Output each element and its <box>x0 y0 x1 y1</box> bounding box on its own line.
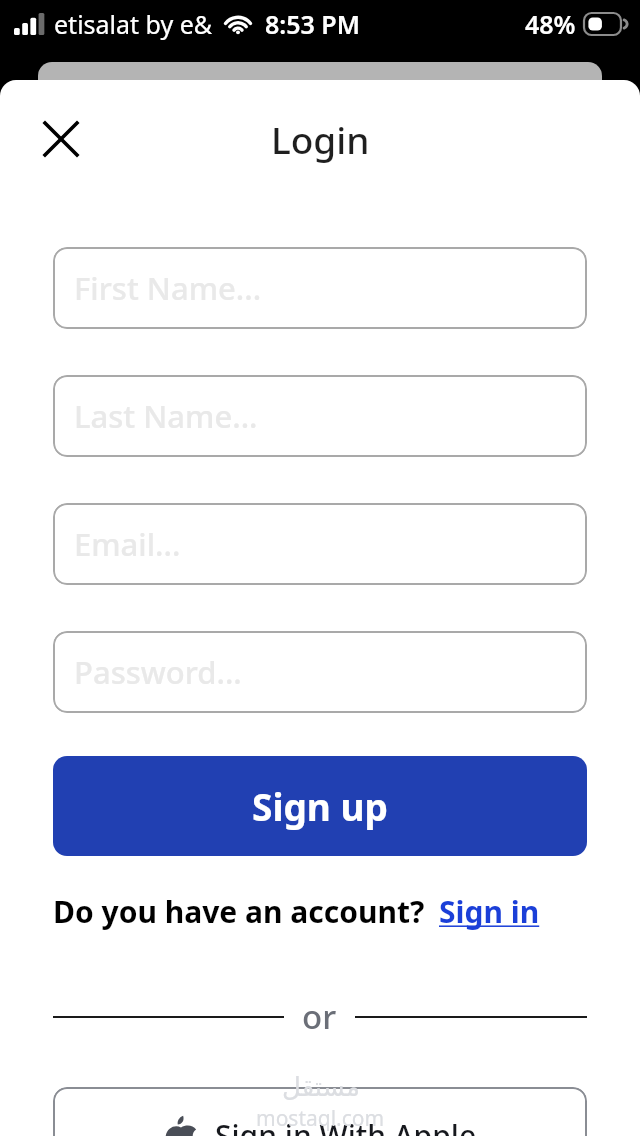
staticText: 48% <box>525 7 576 41</box>
button[interactable]: Sign in <box>439 891 540 932</box>
button[interactable]: Sign in With Apple <box>53 1087 587 1136</box>
staticText: Sign up <box>252 781 388 831</box>
staticText: 8:53 PM <box>265 7 360 41</box>
staticText: Password... <box>74 651 242 693</box>
button[interactable]: Password... <box>53 631 587 713</box>
staticText: mostaql.com <box>256 1104 385 1133</box>
button[interactable]: First Name... <box>53 247 587 329</box>
button[interactable]: Sign up <box>53 756 587 856</box>
staticText: Do you have an account? <box>53 891 425 932</box>
staticText: مستقل <box>282 1072 360 1102</box>
staticText: Email... <box>74 523 181 565</box>
staticText: Sign in <box>439 891 540 932</box>
staticText: First Name... <box>74 267 262 309</box>
staticText: Sign in With Apple <box>215 1115 477 1136</box>
button[interactable]: Last Name... <box>53 375 587 457</box>
button[interactable]: Close <box>32 110 90 168</box>
staticText: etisalat by e& <box>54 7 213 41</box>
staticText: or <box>302 994 337 1039</box>
staticText: Last Name... <box>74 395 258 437</box>
staticText: Login <box>271 114 370 164</box>
button[interactable]: Email... <box>53 503 587 585</box>
